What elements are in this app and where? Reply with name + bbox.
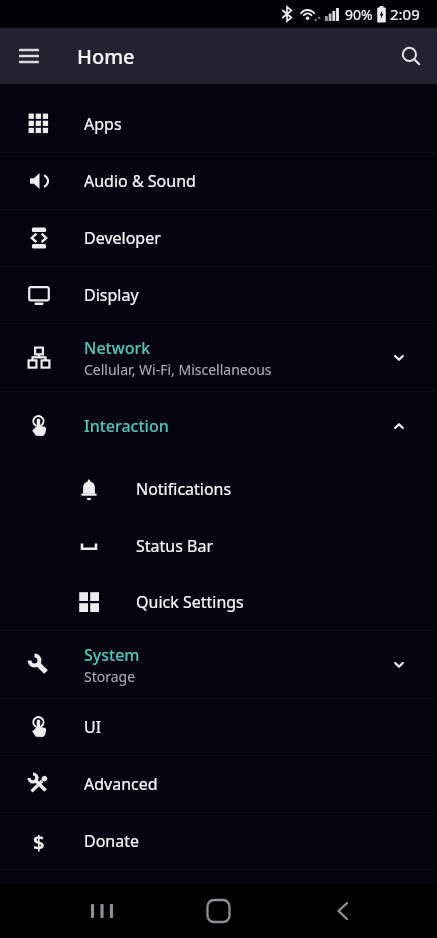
staticText: Developer	[84, 227, 161, 249]
staticText: Apps	[84, 113, 122, 135]
button[interactable]: Quick Settings	[0, 574, 437, 630]
button[interactable]	[145, 884, 291, 938]
staticText: Notifications	[136, 478, 232, 500]
button[interactable]: Status Bar	[0, 517, 437, 574]
staticText: Interaction	[84, 415, 169, 437]
staticText: Network	[84, 337, 151, 359]
button[interactable]: Display	[0, 267, 437, 323]
staticText: Audio & Sound	[84, 170, 196, 192]
button[interactable]	[0, 28, 58, 84]
button[interactable]: Notifications	[0, 460, 437, 517]
button[interactable]: $	[0, 813, 437, 869]
staticText: Quick Settings	[136, 591, 244, 613]
staticText: Storage	[84, 667, 136, 686]
button[interactable]: UI	[0, 699, 437, 755]
staticText: UI	[84, 716, 102, 738]
staticText: Donate	[84, 830, 140, 852]
staticText: 2:09	[390, 4, 420, 24]
button[interactable]	[0, 884, 102, 938]
button[interactable]: System	[0, 631, 437, 698]
button[interactable]: Apps	[0, 96, 437, 152]
staticText: 90%	[345, 5, 373, 24]
button[interactable]: Audio & Sound	[0, 153, 437, 209]
staticText: Home	[77, 43, 135, 70]
button[interactable]	[0, 884, 145, 938]
button[interactable]: Interaction	[0, 392, 437, 460]
staticText: Advanced	[84, 773, 158, 795]
staticText: System	[84, 644, 140, 666]
staticText: $	[33, 829, 45, 853]
button[interactable]: Developer	[0, 210, 437, 266]
staticText: Status Bar	[136, 535, 214, 557]
button[interactable]: Advanced	[0, 756, 437, 812]
staticText: Cellular, Wi-Fi, Miscellaneous	[84, 360, 272, 379]
button[interactable]: Network	[0, 324, 437, 391]
button[interactable]	[387, 32, 435, 80]
button[interactable]	[291, 884, 437, 938]
staticText: Display	[84, 284, 139, 306]
